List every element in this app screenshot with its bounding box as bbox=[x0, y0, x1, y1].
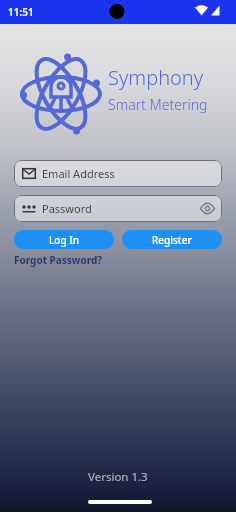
button[interactable]: Password bbox=[14, 195, 222, 222]
staticText: Version 1.3 bbox=[88, 469, 148, 485]
button[interactable]: Forgot Password? bbox=[14, 253, 103, 267]
staticText: 11:51 bbox=[8, 5, 34, 19]
button[interactable]: Register bbox=[122, 230, 222, 249]
staticText: Password bbox=[42, 201, 92, 216]
staticText: Register bbox=[152, 233, 192, 247]
button[interactable]: Log In bbox=[14, 230, 114, 249]
staticText: Smart Metering bbox=[108, 95, 208, 114]
staticText: Log In bbox=[49, 233, 80, 247]
staticText: Symphony bbox=[108, 64, 204, 91]
button[interactable] bbox=[200, 203, 215, 214]
button[interactable]: Email Address bbox=[14, 160, 222, 187]
staticText: Email Address bbox=[42, 166, 115, 181]
